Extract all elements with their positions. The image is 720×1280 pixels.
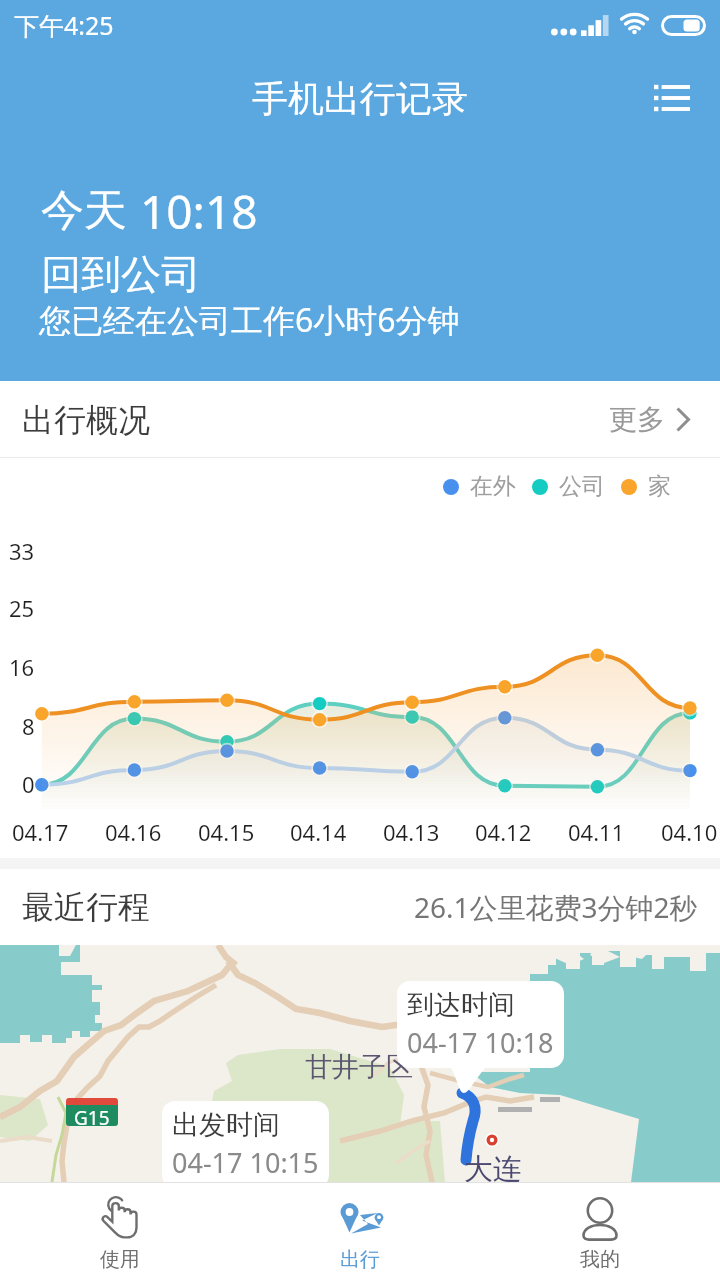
staticText: 回到公司 xyxy=(41,249,201,299)
staticText: 我的 xyxy=(580,1247,620,1272)
staticText: 04.14 xyxy=(290,817,347,847)
staticText: 您已经在公司工作6小时6分钟 xyxy=(39,298,460,342)
staticText: 04.11 xyxy=(568,817,625,847)
staticText: 大连 xyxy=(464,1151,522,1182)
button[interactable]: 我的 xyxy=(480,1182,720,1280)
staticText: 26.1公里花费3分钟2秒 xyxy=(414,888,698,926)
staticText: 10:18 xyxy=(140,180,258,243)
button[interactable]: 使用 xyxy=(0,1182,240,1280)
staticText: 到达时间 xyxy=(407,988,515,1022)
staticText: 出行概况 xyxy=(22,400,150,440)
button[interactable]: 最近行程 xyxy=(22,869,698,945)
staticText: G15 xyxy=(74,1105,110,1126)
staticText: 在外 xyxy=(470,472,516,501)
staticText: 使用 xyxy=(100,1247,140,1272)
staticText: 8 xyxy=(22,711,35,741)
staticText: 04.10 xyxy=(661,817,718,847)
staticText: 04.16 xyxy=(105,817,162,847)
staticText: 下午4:25 xyxy=(14,8,114,42)
staticText: 04.12 xyxy=(475,817,532,847)
staticText: 出行 xyxy=(340,1247,380,1272)
staticText: 04.13 xyxy=(383,817,440,847)
staticText: 手机出行记录 xyxy=(252,76,468,121)
staticText: 家 xyxy=(648,472,671,501)
staticText: 0 xyxy=(22,769,35,799)
staticText: 公司 xyxy=(559,472,605,501)
staticText: 04.17 xyxy=(12,817,69,847)
staticText: 04-17 10:15 xyxy=(172,1144,319,1181)
staticText: 25 xyxy=(9,593,35,623)
staticText: 04.15 xyxy=(198,817,255,847)
staticText: 04-17 10:18 xyxy=(407,1024,554,1061)
staticText: 16 xyxy=(9,652,35,682)
button[interactable]: 出行 xyxy=(240,1182,480,1280)
button[interactable]: 出行概况 xyxy=(22,381,690,458)
staticText: 甘井子区 xyxy=(305,1050,413,1084)
staticText: 今天 xyxy=(41,184,127,238)
staticText: 更多 xyxy=(609,402,665,437)
staticText: 出发时间 xyxy=(172,1108,280,1142)
button[interactable]: Menu xyxy=(640,69,704,127)
staticText: 33 xyxy=(9,536,35,566)
staticText: 最近行程 xyxy=(22,887,150,927)
